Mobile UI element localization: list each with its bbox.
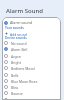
- staticText: Alarm sound: [10, 20, 33, 25]
- button[interactable]: No sound: [2, 40, 61, 46]
- button[interactable]: Blue Moon Rises: [2, 78, 61, 84]
- staticText: Bells: [11, 73, 19, 78]
- staticText: Bedtime Mood: [11, 66, 35, 71]
- button[interactable]: Bounce: [2, 90, 61, 96]
- staticText: Bright: [11, 60, 21, 65]
- button[interactable]: Add sound: [2, 31, 61, 36]
- staticText: Blue Moon Rises: [11, 79, 38, 84]
- staticText: Bounce: [11, 91, 23, 96]
- button[interactable]: Argon: [2, 53, 61, 59]
- button[interactable]: Bedtime Mood: [2, 65, 61, 71]
- staticText: No sound: [11, 41, 27, 46]
- button[interactable]: Bubbles: [2, 97, 61, 100]
- button[interactable]: Alarm sound: [2, 19, 61, 26]
- staticText: Bliss: [11, 85, 19, 90]
- staticText: Argon: [11, 54, 21, 59]
- staticText: Add sound: [10, 32, 27, 36]
- button[interactable]: Alarm Bell: [2, 46, 61, 52]
- staticText: Bubbles: [11, 98, 24, 100]
- button[interactable]: Bliss: [2, 84, 61, 90]
- staticText: Alarm Bell: [11, 47, 28, 52]
- staticText: Device sounds: [5, 36, 27, 40]
- button[interactable]: Bright: [2, 59, 61, 65]
- button[interactable]: Bells: [2, 72, 61, 78]
- staticText: Alarm Sound: [6, 7, 43, 15]
- staticText: Your sounds: [5, 26, 24, 30]
